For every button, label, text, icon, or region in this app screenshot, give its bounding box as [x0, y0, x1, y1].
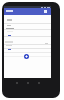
button[interactable]: [4, 30, 51, 36]
button[interactable]: Add: [24, 54, 29, 59]
button[interactable]: [4, 45, 51, 49]
button[interactable]: [4, 37, 51, 44]
button[interactable]: [4, 8, 51, 15]
button[interactable]: [4, 16, 51, 23]
button[interactable]: [4, 24, 51, 29]
